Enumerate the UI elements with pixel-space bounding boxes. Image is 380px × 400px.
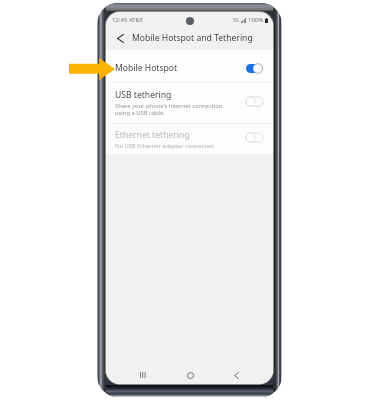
staticText: 100% <box>248 16 264 24</box>
staticText: USB tethering <box>115 89 172 101</box>
staticText: Mobile Hotspot and Tethering <box>132 32 253 44</box>
staticText: Ethernet tethering <box>115 129 190 141</box>
button[interactable]: Recent apps <box>134 366 152 384</box>
staticText: 5G <box>233 17 239 23</box>
staticText: Share your phone's internet connection u… <box>115 102 223 117</box>
staticText: No USB Ethernet adapter connected. <box>115 142 216 150</box>
button[interactable]: Back <box>227 366 245 384</box>
staticText: Mobile Hotspot <box>115 62 178 74</box>
button[interactable]: Ethernet tethering <box>106 124 273 154</box>
button[interactable]: Home <box>181 366 199 384</box>
button[interactable]: Navigate up <box>112 30 128 46</box>
button[interactable]: Mobile Hotspot switch <box>246 63 264 74</box>
button[interactable]: USB tethering switch <box>246 96 264 107</box>
button[interactable]: Mobile Hotspot <box>106 54 273 82</box>
button[interactable]: USB tethering <box>106 83 273 123</box>
button[interactable]: Ethernet tethering switch <box>246 132 264 143</box>
staticText: 12:45 AT&T <box>112 16 143 24</box>
